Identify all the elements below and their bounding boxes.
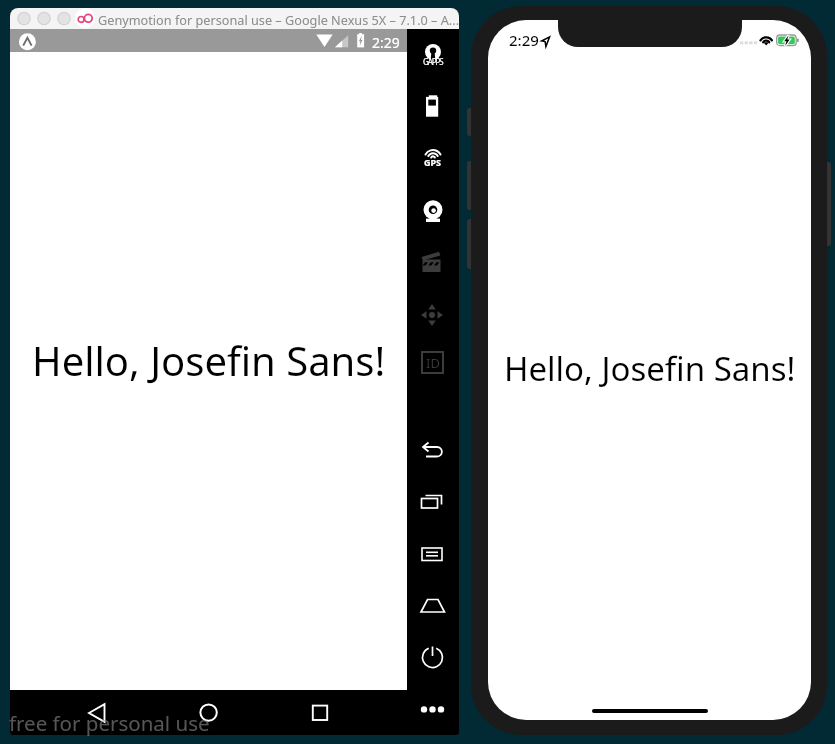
button[interactable]: Rotate device [420,303,446,327]
button[interactable]: Open GAPPS [417,42,449,66]
staticText: 2:29 [509,30,539,50]
button[interactable]: Record screencast [420,251,446,274]
button[interactable]: Battery [422,95,444,118]
staticText: GPS [424,156,442,168]
button[interactable]: Menu [420,543,446,565]
button[interactable]: Recent apps [299,697,341,729]
staticText: free for personal use [9,709,210,737]
button[interactable]: GPS [417,149,449,168]
button[interactable]: More options [417,699,449,719]
button[interactable]: Back [420,439,446,461]
button[interactable]: Recent apps [420,491,446,513]
button[interactable]: Home [420,595,446,617]
button[interactable]: Identifiers [421,351,444,374]
staticText: Hello, Josefin Sans! [504,346,796,391]
button[interactable]: Camera [420,200,446,223]
staticText: GAPPS [423,56,443,67]
staticText: Hello, Josefin Sans! [32,333,386,387]
button[interactable]: Home [188,697,230,729]
staticText: ID [426,354,440,372]
button[interactable]: Power [420,645,446,670]
button[interactable]: Back [76,697,118,729]
staticText: Genymotion for personal use – Google Nex… [98,11,459,28]
staticText: 2:29 [372,33,400,52]
